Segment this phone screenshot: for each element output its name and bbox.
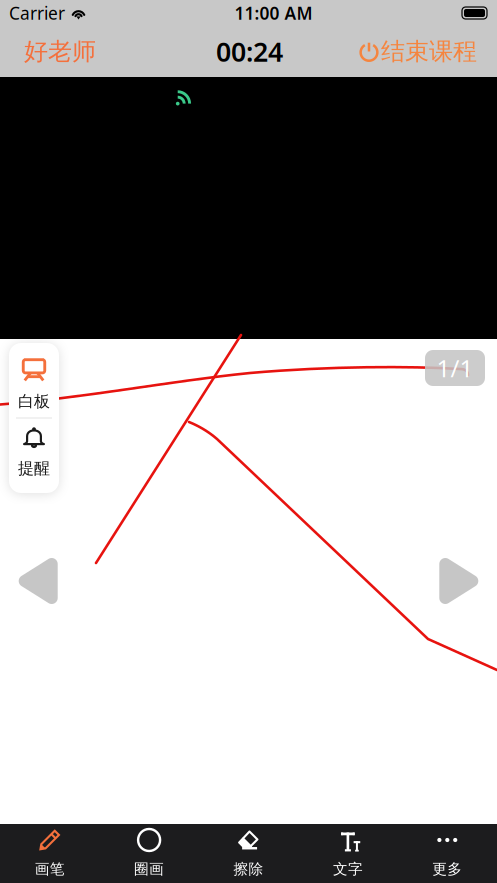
staticText: 结束课程 — [381, 37, 477, 66]
staticText: 1/1 — [436, 352, 473, 384]
button[interactable]: Next page — [442, 558, 478, 604]
staticText: 画笔 — [35, 860, 65, 878]
staticText: 好老师 — [24, 37, 96, 66]
button[interactable]: 白板 — [9, 350, 59, 417]
button[interactable]: 结束课程 — [348, 26, 497, 77]
button[interactable]: 更多 — [398, 824, 497, 883]
staticText: 更多 — [432, 860, 462, 878]
staticText: 白板 — [18, 392, 50, 411]
staticText: 提醒 — [18, 459, 50, 478]
staticText: 11:00 AM — [234, 1, 312, 24]
staticText: 圈画 — [134, 860, 164, 878]
staticText: 擦除 — [233, 860, 263, 878]
button[interactable]: 1/1 — [425, 350, 485, 386]
button[interactable]: 画笔 — [0, 824, 99, 883]
button[interactable]: 圈画 — [99, 824, 199, 883]
button[interactable]: 擦除 — [199, 824, 298, 883]
button[interactable]: 提醒 — [9, 418, 59, 485]
button[interactable]: 文字 — [298, 824, 398, 883]
staticText: 文字 — [333, 860, 363, 878]
staticText: Carrier — [9, 1, 65, 24]
button[interactable]: 好老师 — [0, 26, 112, 77]
staticText: 00:24 — [216, 34, 283, 69]
button[interactable]: Previous page — [19, 558, 55, 604]
